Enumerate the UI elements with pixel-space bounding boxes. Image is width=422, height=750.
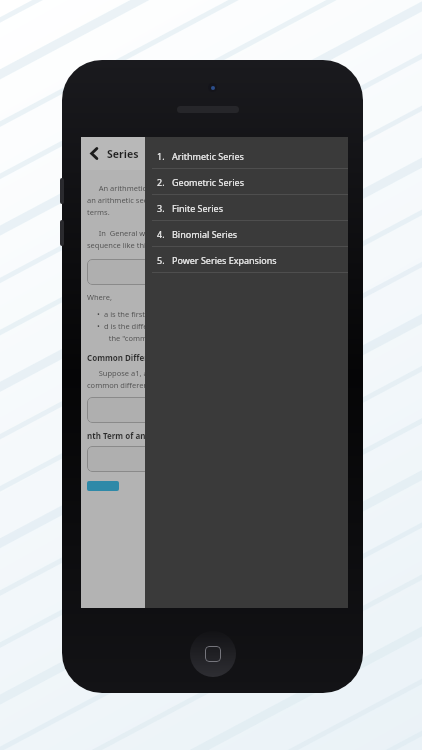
staticText: 1. [157, 150, 172, 162]
staticText: 3. [157, 202, 172, 214]
staticText: {a, a+d, a+2d, a+3d, ... } [170, 267, 260, 278]
staticText: An arithmetic series is the sum of the t… [87, 183, 342, 193]
staticText: 5. [157, 254, 172, 266]
staticText: Arithmetic Series [172, 150, 244, 162]
staticText: an arithmetic sequence with a finite num… [87, 195, 342, 205]
button[interactable]: 1. [145, 143, 348, 169]
staticText: 2. [157, 176, 172, 188]
staticText: Geometric Series [172, 176, 244, 188]
button[interactable] [87, 481, 119, 491]
staticText: • [97, 321, 104, 331]
staticText: nth Term of an A.P. [87, 430, 162, 441]
button[interactable]: 4. [145, 221, 348, 247]
staticText: 4. [157, 228, 172, 240]
staticText: common difference is d, then [87, 380, 342, 390]
staticText: terms. [87, 207, 342, 217]
button[interactable]: Back [81, 137, 107, 170]
staticText: Suppose a1, a2, a3 ... be an A.P. whose [87, 368, 342, 378]
staticText: Finite Series [172, 202, 223, 214]
staticText: Where, [87, 292, 342, 302]
button[interactable]: 3. [145, 195, 348, 221]
staticText: In General we can write an arithmetic [87, 228, 342, 238]
staticText: d is the difference between the terms [104, 321, 236, 331]
staticText: • [97, 309, 104, 319]
staticText: Series [107, 147, 139, 161]
staticText: the "common difference". [97, 333, 342, 343]
staticText: a is the first term, and [104, 309, 182, 319]
staticText: Binomial Series [172, 228, 238, 240]
staticText: Common Difference [87, 352, 167, 363]
staticText: sequence like this: [87, 240, 342, 250]
staticText: Power Series Expansions [172, 254, 277, 266]
button[interactable]: Back [81, 137, 348, 170]
button[interactable]: 5. [145, 247, 348, 273]
button[interactable]: 2. [145, 169, 348, 195]
